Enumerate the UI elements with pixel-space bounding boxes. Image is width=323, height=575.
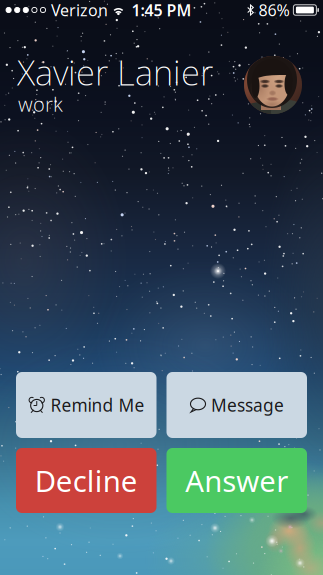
staticText: 1:45 PM (131, 0, 191, 21)
staticText: Answer (185, 461, 288, 500)
staticText: work (18, 91, 63, 117)
staticText: Xavier Lanier (17, 49, 213, 95)
staticText: 86% (258, 0, 289, 21)
staticText: Remind Me (50, 393, 144, 416)
button[interactable]: Message (166, 372, 307, 438)
staticText: Verizon (51, 0, 108, 21)
button[interactable]: Answer (166, 448, 307, 513)
staticText: Message (211, 393, 284, 416)
staticText: Decline (35, 461, 138, 500)
button[interactable]: Remind Me (16, 372, 156, 438)
button[interactable]: Decline (16, 448, 156, 513)
